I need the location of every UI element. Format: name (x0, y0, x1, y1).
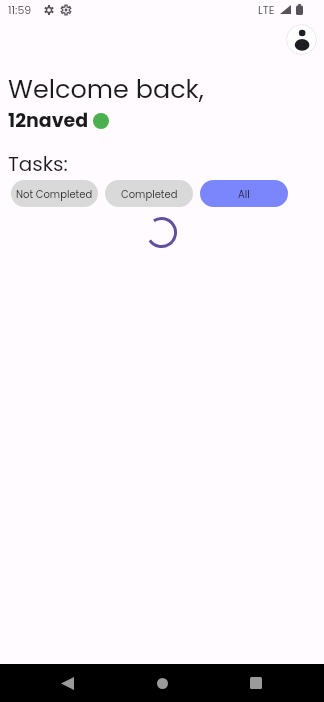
button[interactable]: Back (44, 664, 90, 702)
button[interactable]: Profile (286, 24, 317, 55)
staticText: All (238, 187, 250, 201)
staticText: Not Completed (16, 187, 93, 201)
staticText: 12naved (8, 107, 89, 134)
button[interactable]: Completed (105, 180, 193, 207)
button[interactable]: Home (139, 664, 185, 702)
button[interactable]: Recent apps (233, 664, 279, 702)
staticText: Welcome back, (8, 71, 204, 107)
staticText: LTE (258, 2, 275, 17)
button[interactable]: All (200, 180, 288, 207)
staticText: Tasks: (8, 150, 68, 178)
staticText: 11:59 (8, 2, 32, 17)
button[interactable]: Not Completed (11, 180, 98, 207)
staticText: Completed (121, 187, 178, 201)
